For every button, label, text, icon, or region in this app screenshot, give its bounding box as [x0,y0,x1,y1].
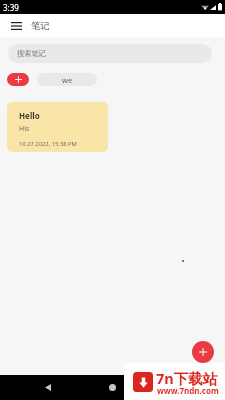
staticText: 10.27.2022, 15:38 PM [19,140,77,148]
staticText: 3:39 [3,2,19,13]
button[interactable]: Add category [7,73,29,86]
button[interactable]: Open navigation menu [0,14,28,37]
button[interactable]: 搜索笔记 [8,44,212,63]
button[interactable]: Recent apps [163,375,192,400]
button[interactable]: Create note [192,341,214,363]
button[interactable]: Home [98,375,127,400]
button[interactable]: Back [33,375,62,400]
button[interactable]: Hello [7,102,108,152]
staticText: His [19,124,30,134]
staticText: 笔记 [31,20,50,32]
staticText: we [62,75,73,85]
staticText: 搜索笔记 [17,49,46,58]
button[interactable]: we [37,73,97,86]
staticText: 7n下载站 [156,368,218,388]
staticText: Hello [19,110,40,121]
staticText: www.7ndn.com [157,385,219,396]
